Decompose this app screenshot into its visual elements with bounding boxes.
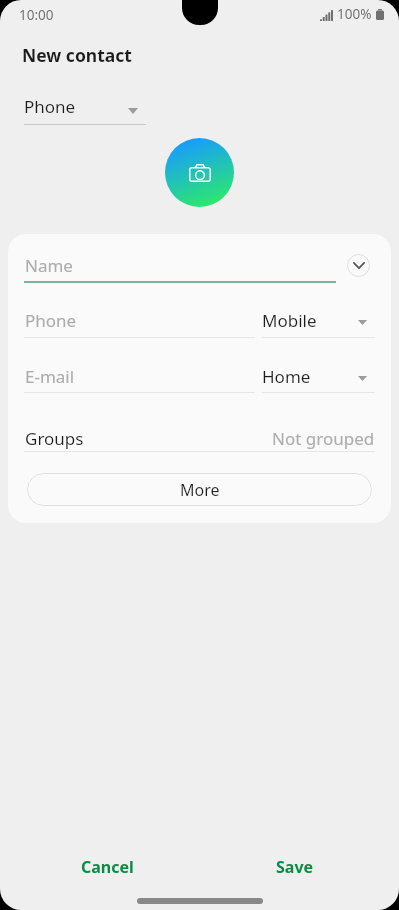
staticText: Not grouped [272,427,375,450]
button[interactable]: Phone [24,94,146,117]
button[interactable]: Groups [24,426,375,453]
button[interactable]: More [27,473,372,506]
staticText: Groups [25,427,84,450]
button[interactable]: Phone [24,303,255,336]
button[interactable]: Cancel [14,848,201,886]
button[interactable]: Name [24,248,336,281]
button[interactable]: Home [262,358,375,392]
staticText: Phone [25,309,77,332]
button[interactable]: Expand name fields [347,254,370,277]
staticText: Home [262,365,311,388]
staticText: Save [276,856,314,878]
button[interactable]: Save [201,848,389,886]
button[interactable]: Add contact photo [165,138,234,207]
button[interactable]: E-mail [24,359,255,392]
staticText: 100% [337,5,372,23]
button[interactable]: Mobile [262,302,375,336]
staticText: E-mail [25,365,75,388]
staticText: Name [25,254,73,277]
staticText: Phone [24,95,76,118]
staticText: 10:00 [19,6,54,24]
staticText: More [180,479,220,501]
staticText: Cancel [81,856,134,878]
staticText: Mobile [262,309,317,332]
staticText: New contact [22,43,132,67]
